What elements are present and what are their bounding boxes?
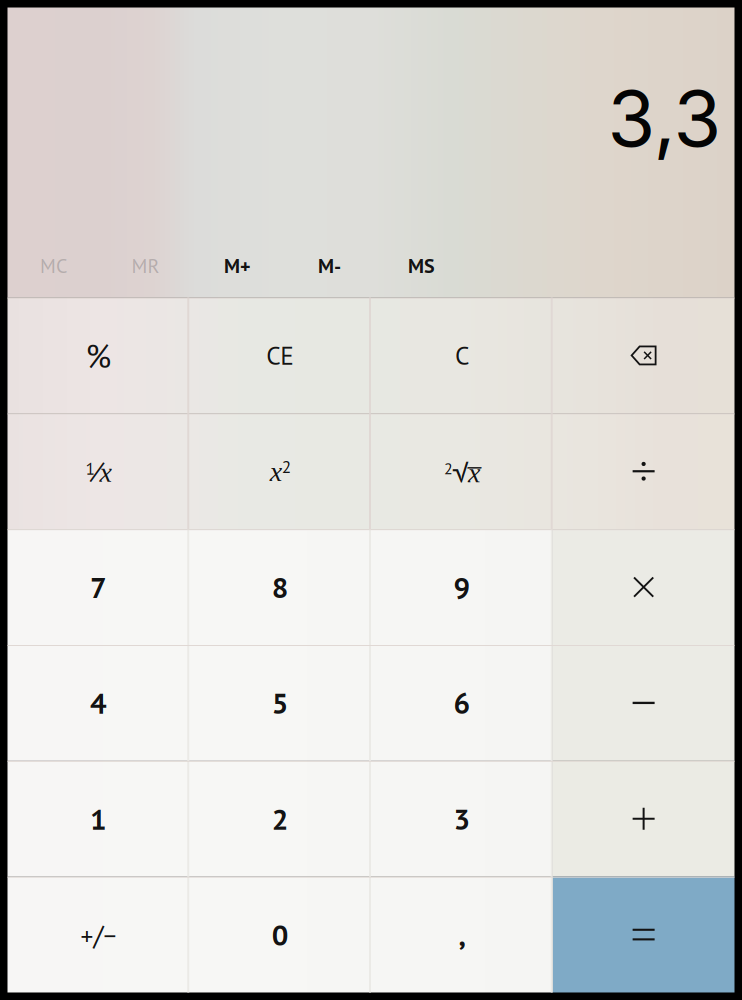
button[interactable]: Equals	[553, 877, 735, 992]
staticText: 8	[272, 568, 289, 606]
button[interactable]: MR	[99, 249, 191, 281]
button[interactable]	[371, 761, 553, 877]
button[interactable]	[371, 529, 553, 645]
button[interactable]	[7, 297, 189, 413]
button[interactable]	[7, 529, 189, 645]
staticText: MS	[408, 253, 435, 278]
staticText: M+	[224, 253, 251, 278]
button[interactable]	[7, 877, 189, 992]
staticText: 9	[453, 568, 470, 606]
button[interactable]: MS	[375, 249, 467, 281]
button[interactable]	[371, 413, 553, 529]
staticText: 4	[90, 684, 107, 722]
button[interactable]	[371, 645, 553, 761]
button[interactable]: M+	[191, 249, 283, 281]
button[interactable]	[371, 297, 553, 413]
button[interactable]: Backspace	[553, 297, 735, 413]
staticText: CE	[266, 339, 294, 372]
button[interactable]: Multiply	[553, 529, 735, 645]
button[interactable]	[371, 877, 553, 992]
button[interactable]: Add	[553, 761, 735, 877]
staticText: 3,3	[607, 71, 721, 165]
staticText: %	[85, 334, 111, 377]
button[interactable]	[189, 297, 371, 413]
staticText: 2	[272, 800, 289, 838]
button[interactable]: M-	[283, 249, 375, 281]
staticText: 0	[272, 916, 289, 954]
button[interactable]: Subtract	[553, 645, 735, 761]
staticText: MC	[40, 253, 67, 278]
staticText: 2√x̅	[444, 453, 480, 490]
button[interactable]	[189, 877, 371, 992]
staticText: M-	[318, 253, 341, 278]
staticText: 3	[453, 800, 470, 838]
button[interactable]	[189, 529, 371, 645]
staticText: 7	[90, 568, 107, 606]
button[interactable]: MC	[7, 249, 99, 281]
staticText: 6	[453, 684, 470, 722]
button[interactable]: Divide	[553, 413, 735, 529]
button[interactable]	[7, 645, 189, 761]
button[interactable]	[189, 413, 371, 529]
staticText: MR	[131, 253, 159, 278]
button[interactable]	[189, 645, 371, 761]
button[interactable]	[7, 761, 189, 877]
staticText: 1	[90, 800, 107, 838]
staticText: 5	[272, 684, 289, 722]
staticText: C	[455, 339, 469, 372]
staticText: ,	[458, 916, 465, 954]
staticText: +/−	[80, 917, 116, 952]
staticText: x2	[270, 456, 291, 487]
button[interactable]	[7, 413, 189, 529]
staticText: 1⁄x	[85, 454, 111, 489]
button[interactable]	[189, 761, 371, 877]
